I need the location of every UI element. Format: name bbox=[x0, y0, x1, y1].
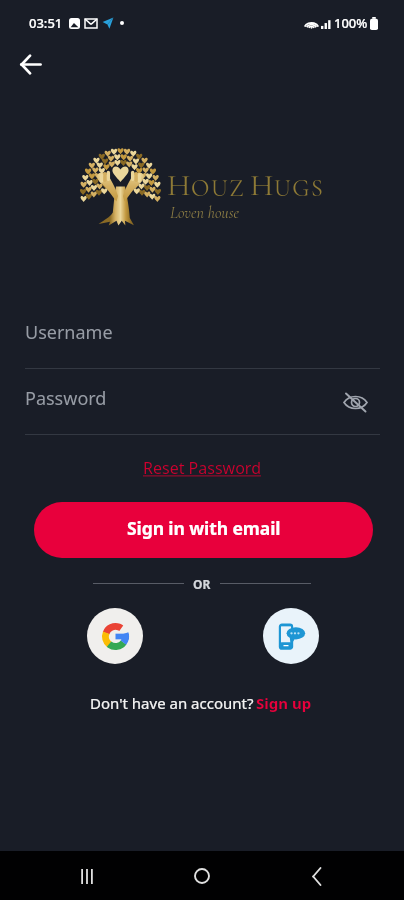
staticText: Sign in with email bbox=[127, 516, 281, 540]
button[interactable]: Reset Password bbox=[139, 453, 265, 483]
staticText: 100% bbox=[334, 14, 368, 32]
button[interactable]: Home bbox=[182, 856, 222, 896]
staticText: H bbox=[250, 166, 274, 204]
staticText: 03:51 bbox=[29, 14, 63, 32]
staticText: H bbox=[167, 166, 191, 204]
staticText: Password bbox=[25, 386, 107, 411]
button[interactable]: Sign in with phone bbox=[263, 608, 319, 664]
staticText: OUZ bbox=[191, 174, 246, 203]
button[interactable]: Sign in with Google bbox=[87, 608, 143, 664]
staticText: Username bbox=[25, 320, 113, 345]
button[interactable]: Sign up bbox=[258, 693, 314, 713]
staticText: Don't have an account? bbox=[90, 693, 258, 713]
staticText: UGS bbox=[274, 174, 325, 203]
button[interactable]: Recent apps bbox=[67, 856, 107, 896]
button[interactable]: Sign in with email bbox=[34, 502, 373, 558]
staticText: Loven house bbox=[170, 203, 240, 222]
button[interactable]: Show password bbox=[338, 385, 372, 419]
button[interactable]: Password bbox=[0, 376, 404, 436]
staticText: OR bbox=[193, 576, 211, 592]
button[interactable]: Username bbox=[0, 310, 404, 370]
button[interactable]: Back bbox=[8, 42, 52, 86]
button[interactable]: Back bbox=[297, 856, 337, 896]
